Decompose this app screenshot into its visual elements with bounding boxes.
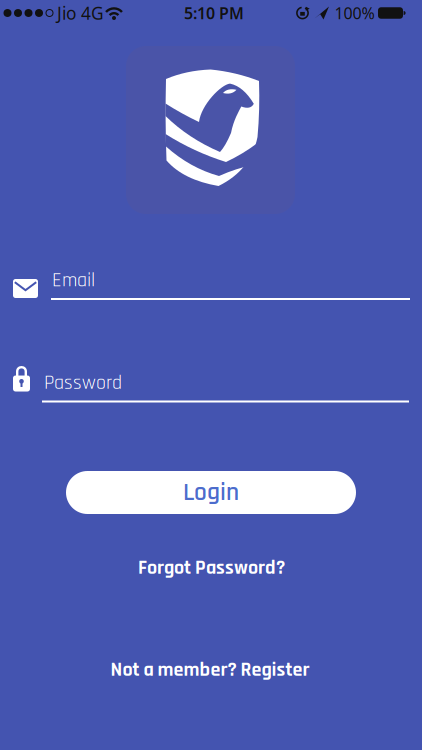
staticText: Forgot Password? <box>138 555 285 581</box>
staticText: 5:10 PM <box>184 2 244 24</box>
button[interactable]: Password <box>13 360 410 404</box>
staticText: 100% <box>334 2 374 24</box>
staticText: Not a member? Register <box>110 657 309 683</box>
staticText: Password <box>44 370 122 396</box>
button[interactable]: Not a member? Register <box>110 657 309 683</box>
button[interactable]: Forgot Password? <box>138 555 285 581</box>
button[interactable]: Email <box>13 265 410 305</box>
staticText: Email <box>52 268 95 293</box>
staticText: Login <box>183 476 239 509</box>
staticText: Jio 4G <box>57 1 104 24</box>
button[interactable]: Login <box>66 471 356 514</box>
